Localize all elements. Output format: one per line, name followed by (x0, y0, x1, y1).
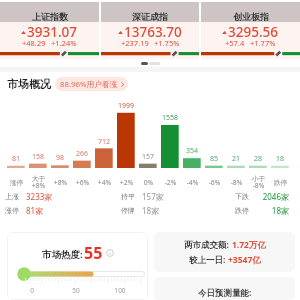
staticText: +57.4 (225, 38, 245, 48)
staticText: 跌停 (269, 178, 292, 187)
staticText: 18 (271, 154, 289, 164)
button[interactable]: 市场热度: (7, 232, 148, 300)
staticText: 大于 +8% (27, 174, 50, 190)
staticText: 今日预测量能: (198, 287, 252, 299)
staticText: 28 (249, 154, 267, 164)
staticText: 3295.56 (228, 23, 279, 41)
button[interactable]: 创业板指 (201, 0, 300, 59)
staticText: 1999 (117, 101, 135, 111)
staticText: 88.96%用户看涨 (60, 79, 118, 90)
staticText: 18家 (142, 205, 160, 216)
staticText: -6% (203, 178, 226, 187)
staticText: 157家 (142, 191, 164, 202)
staticText: 涨停 (5, 206, 19, 215)
staticText: +1.77% (250, 38, 276, 48)
staticText: 50 (68, 286, 84, 295)
staticText: +8% (49, 178, 72, 187)
staticText: 85 (205, 154, 223, 164)
staticText: 涨停 (5, 178, 28, 187)
button[interactable]: 上证指数 (0, 0, 99, 59)
staticText: +1.24% (51, 38, 77, 48)
button[interactable]: 深证成指 (101, 0, 199, 59)
staticText: 100 (112, 286, 128, 295)
staticText: 跌停 (235, 206, 249, 215)
staticText: 较上一日: (189, 254, 228, 266)
staticText: 下跌 (235, 192, 249, 201)
staticText: 712 (95, 137, 113, 147)
staticText: 354 (183, 146, 201, 156)
staticText: +48.29 (22, 38, 46, 48)
staticText: +6% (71, 178, 94, 187)
staticText: 1558 (161, 113, 179, 123)
staticText: -2% (159, 178, 182, 187)
staticText: 98 (51, 153, 69, 163)
staticText: +237.19 (121, 38, 149, 48)
button[interactable]: 市场热度说明 (106, 249, 114, 257)
staticText: 266 (73, 149, 91, 159)
staticText: 21 (227, 154, 245, 164)
staticText: 上涨 (5, 192, 19, 201)
staticText: 停牌 (121, 206, 135, 215)
staticText: 1.72万亿 (232, 239, 266, 251)
staticText: 深证成指 (132, 11, 168, 22)
staticText: 81 (7, 154, 25, 164)
staticText: 3931.07 (27, 23, 78, 41)
staticText: 持平 (121, 192, 135, 201)
staticText: 市场概况 (7, 77, 51, 91)
staticText: 2046家 (257, 191, 289, 202)
staticText: 18家 (257, 205, 289, 216)
staticText: -8% (225, 178, 248, 187)
button[interactable]: 两市成交额: (154, 232, 295, 272)
staticText: 3233家 (26, 191, 53, 202)
staticText: +4% (93, 178, 116, 187)
staticText: 157 (139, 152, 157, 162)
staticText: 两市成交额: (184, 239, 232, 251)
staticText: 创业板指 (233, 11, 269, 22)
staticText: +3547亿 (228, 254, 261, 266)
staticText: 158 (29, 152, 47, 162)
staticText: 小于 -8% (247, 174, 270, 190)
staticText: 上证指数 (32, 11, 68, 22)
staticText: +2% (115, 178, 138, 187)
staticText: -4% (181, 178, 204, 187)
button[interactable]: 88.96%用户看涨 (55, 77, 128, 91)
staticText: 55 (84, 242, 103, 264)
staticText: 81家 (26, 205, 44, 216)
staticText: 13763.70 (124, 23, 182, 41)
staticText: 0 (24, 286, 40, 295)
staticText: 市场热度: (42, 248, 83, 261)
staticText: 0% (137, 178, 160, 187)
staticText: +1.75% (154, 38, 180, 48)
button[interactable]: 今日预测量能: (154, 277, 295, 300)
